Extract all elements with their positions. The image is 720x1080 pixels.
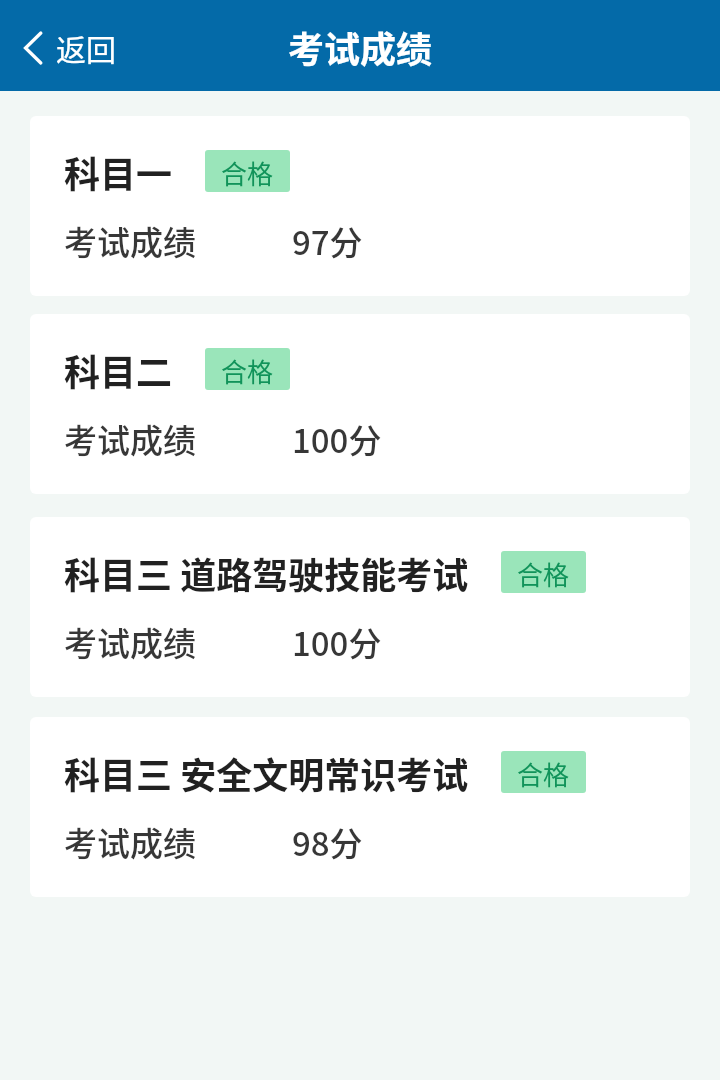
- button[interactable]: 科目三 安全文明常识考试: [30, 717, 690, 897]
- staticText: 科目一: [64, 146, 173, 198]
- staticText: 科目三 道路驾驶技能考试: [64, 547, 469, 599]
- staticText: 合格: [221, 352, 274, 390]
- staticText: 合格: [221, 154, 274, 192]
- button[interactable]: 科目一: [30, 116, 690, 296]
- staticText: 科目三 安全文明常识考试: [64, 747, 469, 799]
- staticText: 100分: [292, 415, 382, 463]
- other: Back: [23, 31, 44, 65]
- button[interactable]: 返回: [0, 14, 136, 77]
- staticText: 考试成绩: [64, 618, 196, 666]
- staticText: 100分: [292, 618, 382, 666]
- staticText: 97分: [292, 217, 363, 265]
- button[interactable]: 科目三 道路驾驶技能考试: [30, 517, 690, 697]
- staticText: 98分: [292, 818, 363, 866]
- staticText: 返回: [56, 26, 116, 69]
- staticText: 考试成绩: [64, 818, 196, 866]
- staticText: 考试成绩: [288, 21, 433, 73]
- staticText: 合格: [517, 555, 570, 593]
- staticText: 科目二: [64, 344, 173, 396]
- button[interactable]: 科目二: [30, 314, 690, 494]
- staticText: 合格: [517, 755, 570, 793]
- staticText: 考试成绩: [64, 217, 196, 265]
- staticText: 考试成绩: [64, 415, 196, 463]
